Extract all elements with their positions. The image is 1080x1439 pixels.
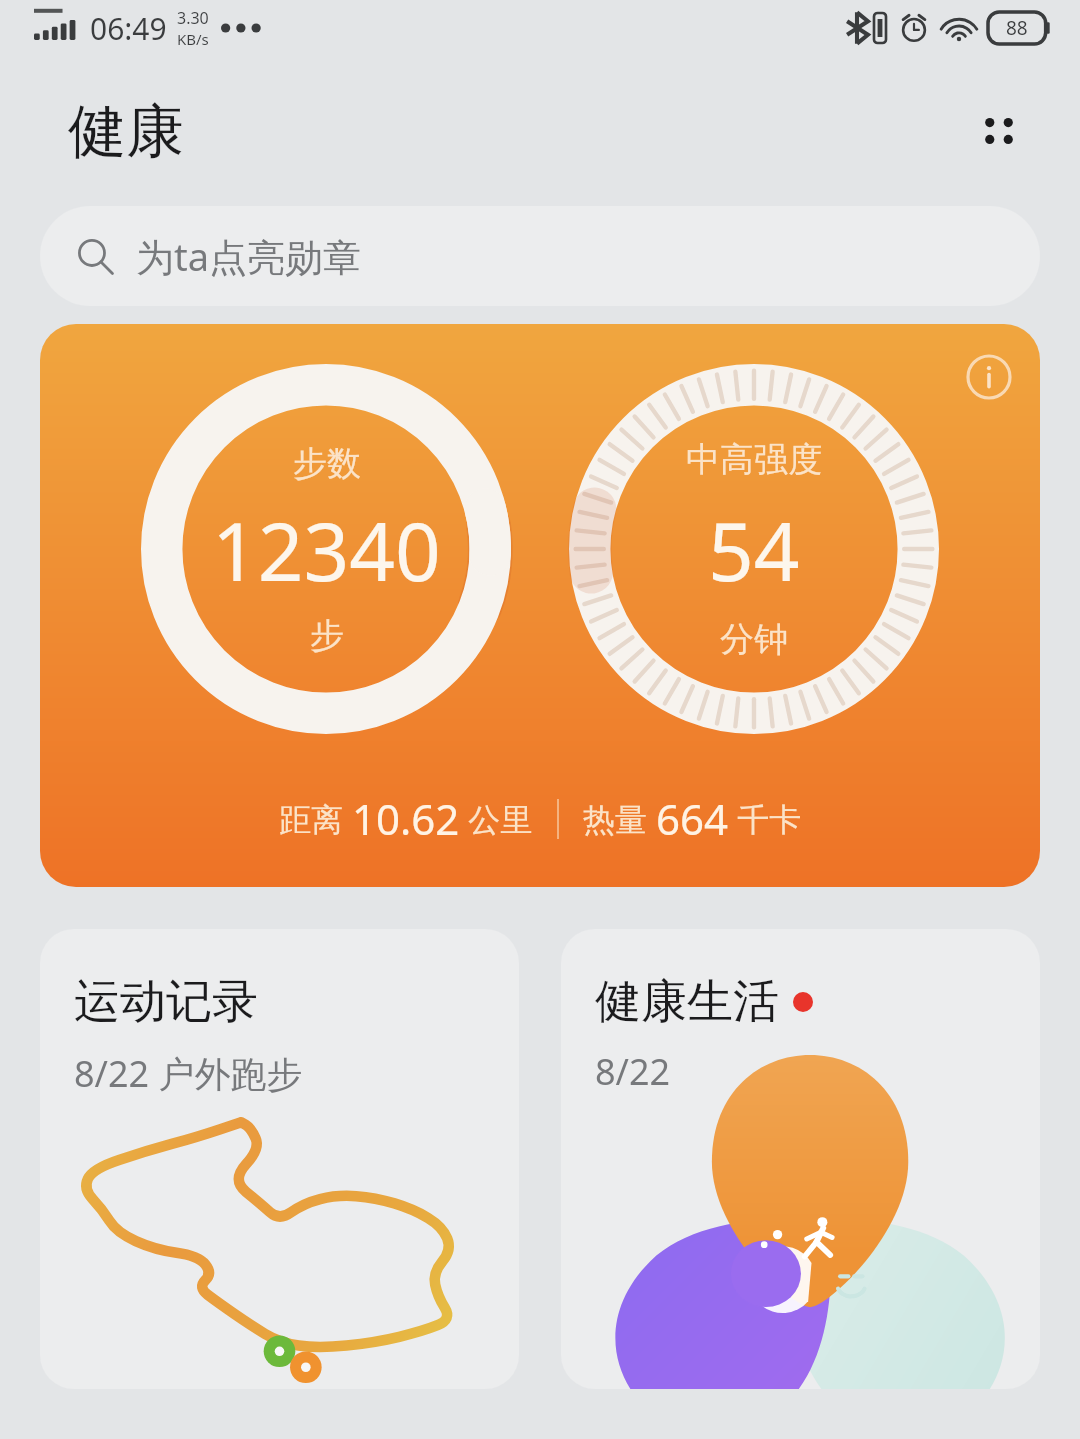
staticText: 公里 — [460, 797, 533, 841]
staticText: 88 — [1006, 15, 1028, 41]
staticText: 06:49 — [90, 8, 167, 49]
staticText: 热量 — [583, 797, 656, 841]
button[interactable]: 健康生活 — [561, 929, 1040, 1389]
button[interactable]: 运动记录 — [40, 929, 519, 1389]
staticText: 为ta点亮勋章 — [136, 230, 362, 282]
staticText: 10.62 — [352, 790, 460, 847]
button[interactable]: More options — [962, 94, 1036, 168]
staticText: 8/22 户外跑步 — [74, 1049, 303, 1098]
button[interactable]: Information — [958, 346, 1020, 408]
staticText: 3.30 — [177, 7, 209, 29]
staticText: 运动记录 — [74, 973, 258, 1031]
staticText: 步 — [310, 614, 344, 657]
staticText: 54 — [708, 495, 800, 604]
staticText: 中高强度 — [686, 438, 822, 481]
staticText: 664 — [656, 790, 729, 847]
staticText: 步数 — [293, 442, 361, 485]
staticText: 千卡 — [729, 797, 802, 841]
staticText: 健康 — [68, 95, 184, 168]
button[interactable]: Information — [40, 324, 1040, 887]
button[interactable]: 为ta点亮勋章 — [40, 206, 1040, 306]
staticText: 距离 — [279, 797, 352, 841]
staticText: 12340 — [212, 495, 441, 604]
staticText: 分钟 — [720, 618, 788, 661]
staticText: 健康生活 — [595, 973, 779, 1031]
staticText: KB/s — [177, 29, 209, 49]
staticText: 8/22 — [595, 1047, 671, 1096]
